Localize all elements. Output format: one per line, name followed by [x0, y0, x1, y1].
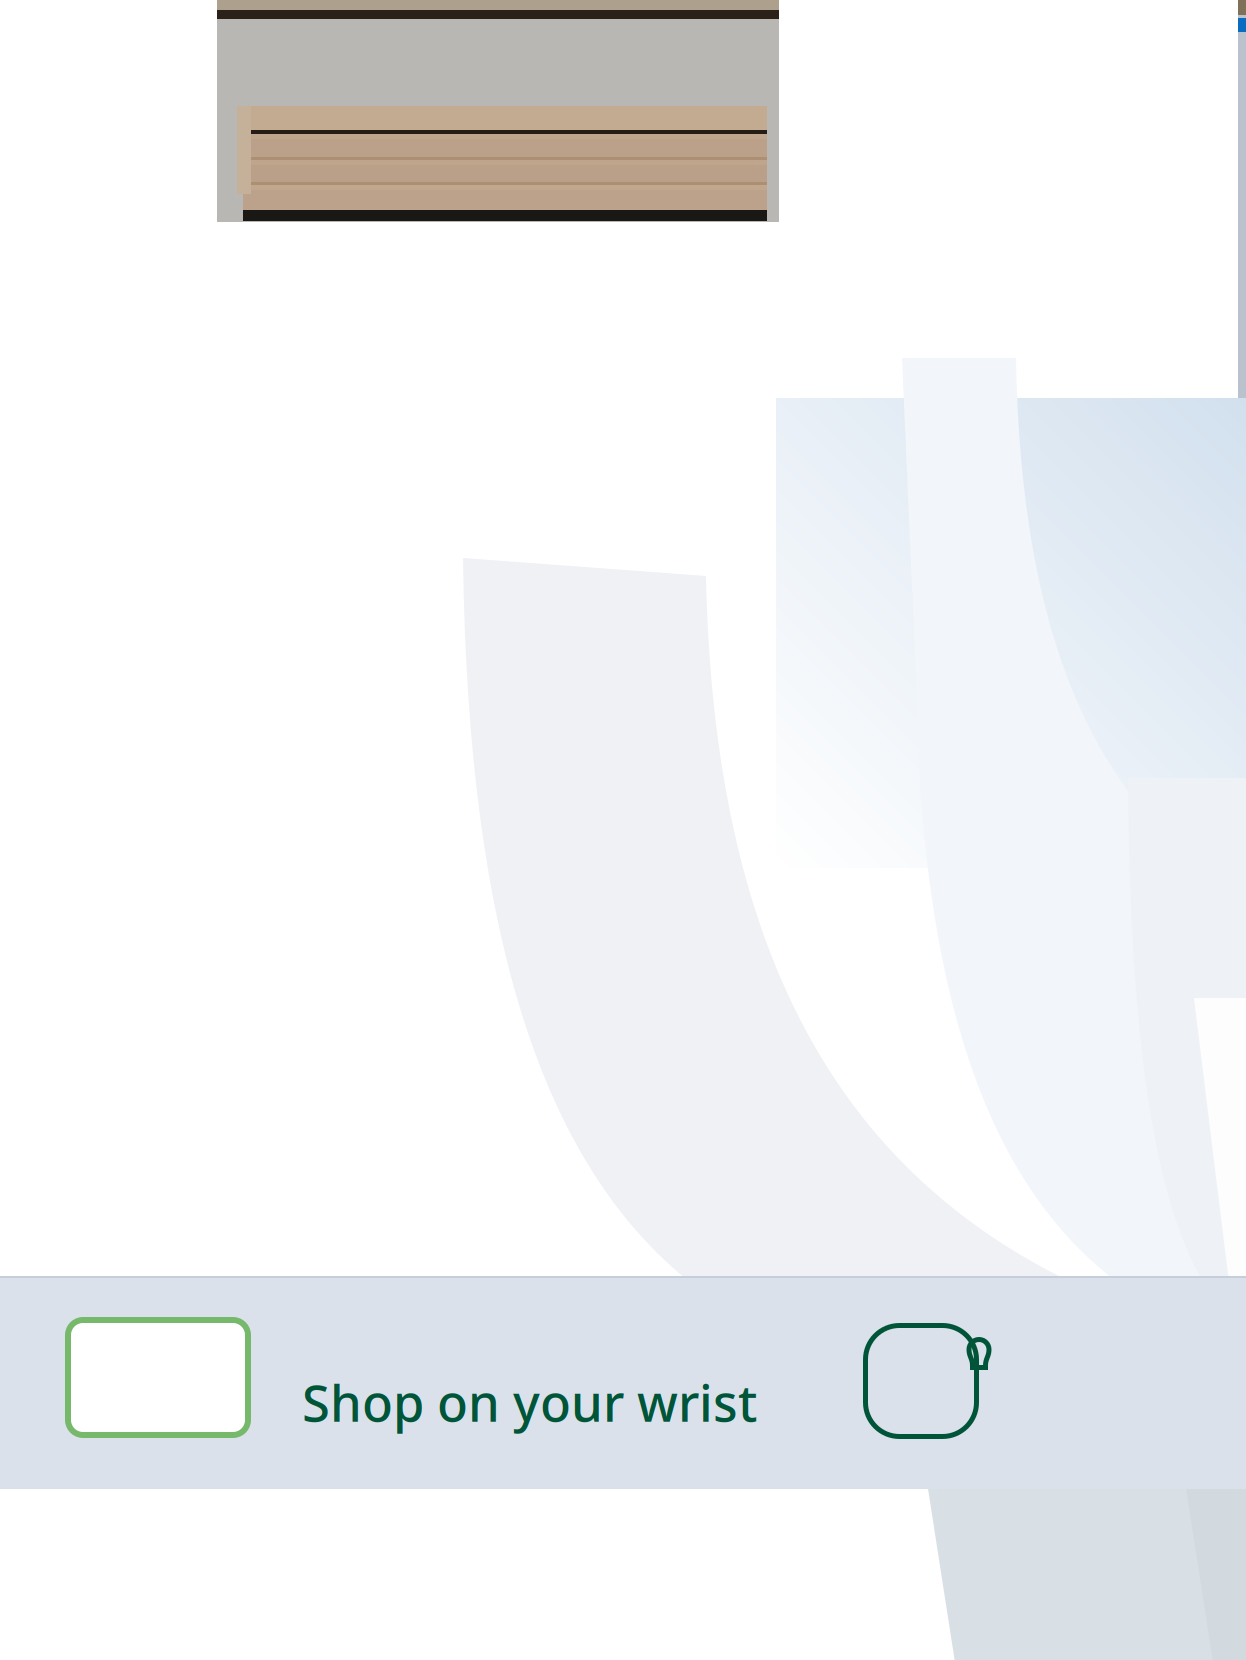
button[interactable]: Sideboard, product photo	[217, 0, 779, 222]
button[interactable]: Brand	[68, 1320, 248, 1435]
button[interactable]: Apple Watch	[863, 1323, 991, 1439]
staticText: Shop on your wrist	[302, 1368, 757, 1436]
button[interactable]: Next item	[1238, 0, 1246, 478]
